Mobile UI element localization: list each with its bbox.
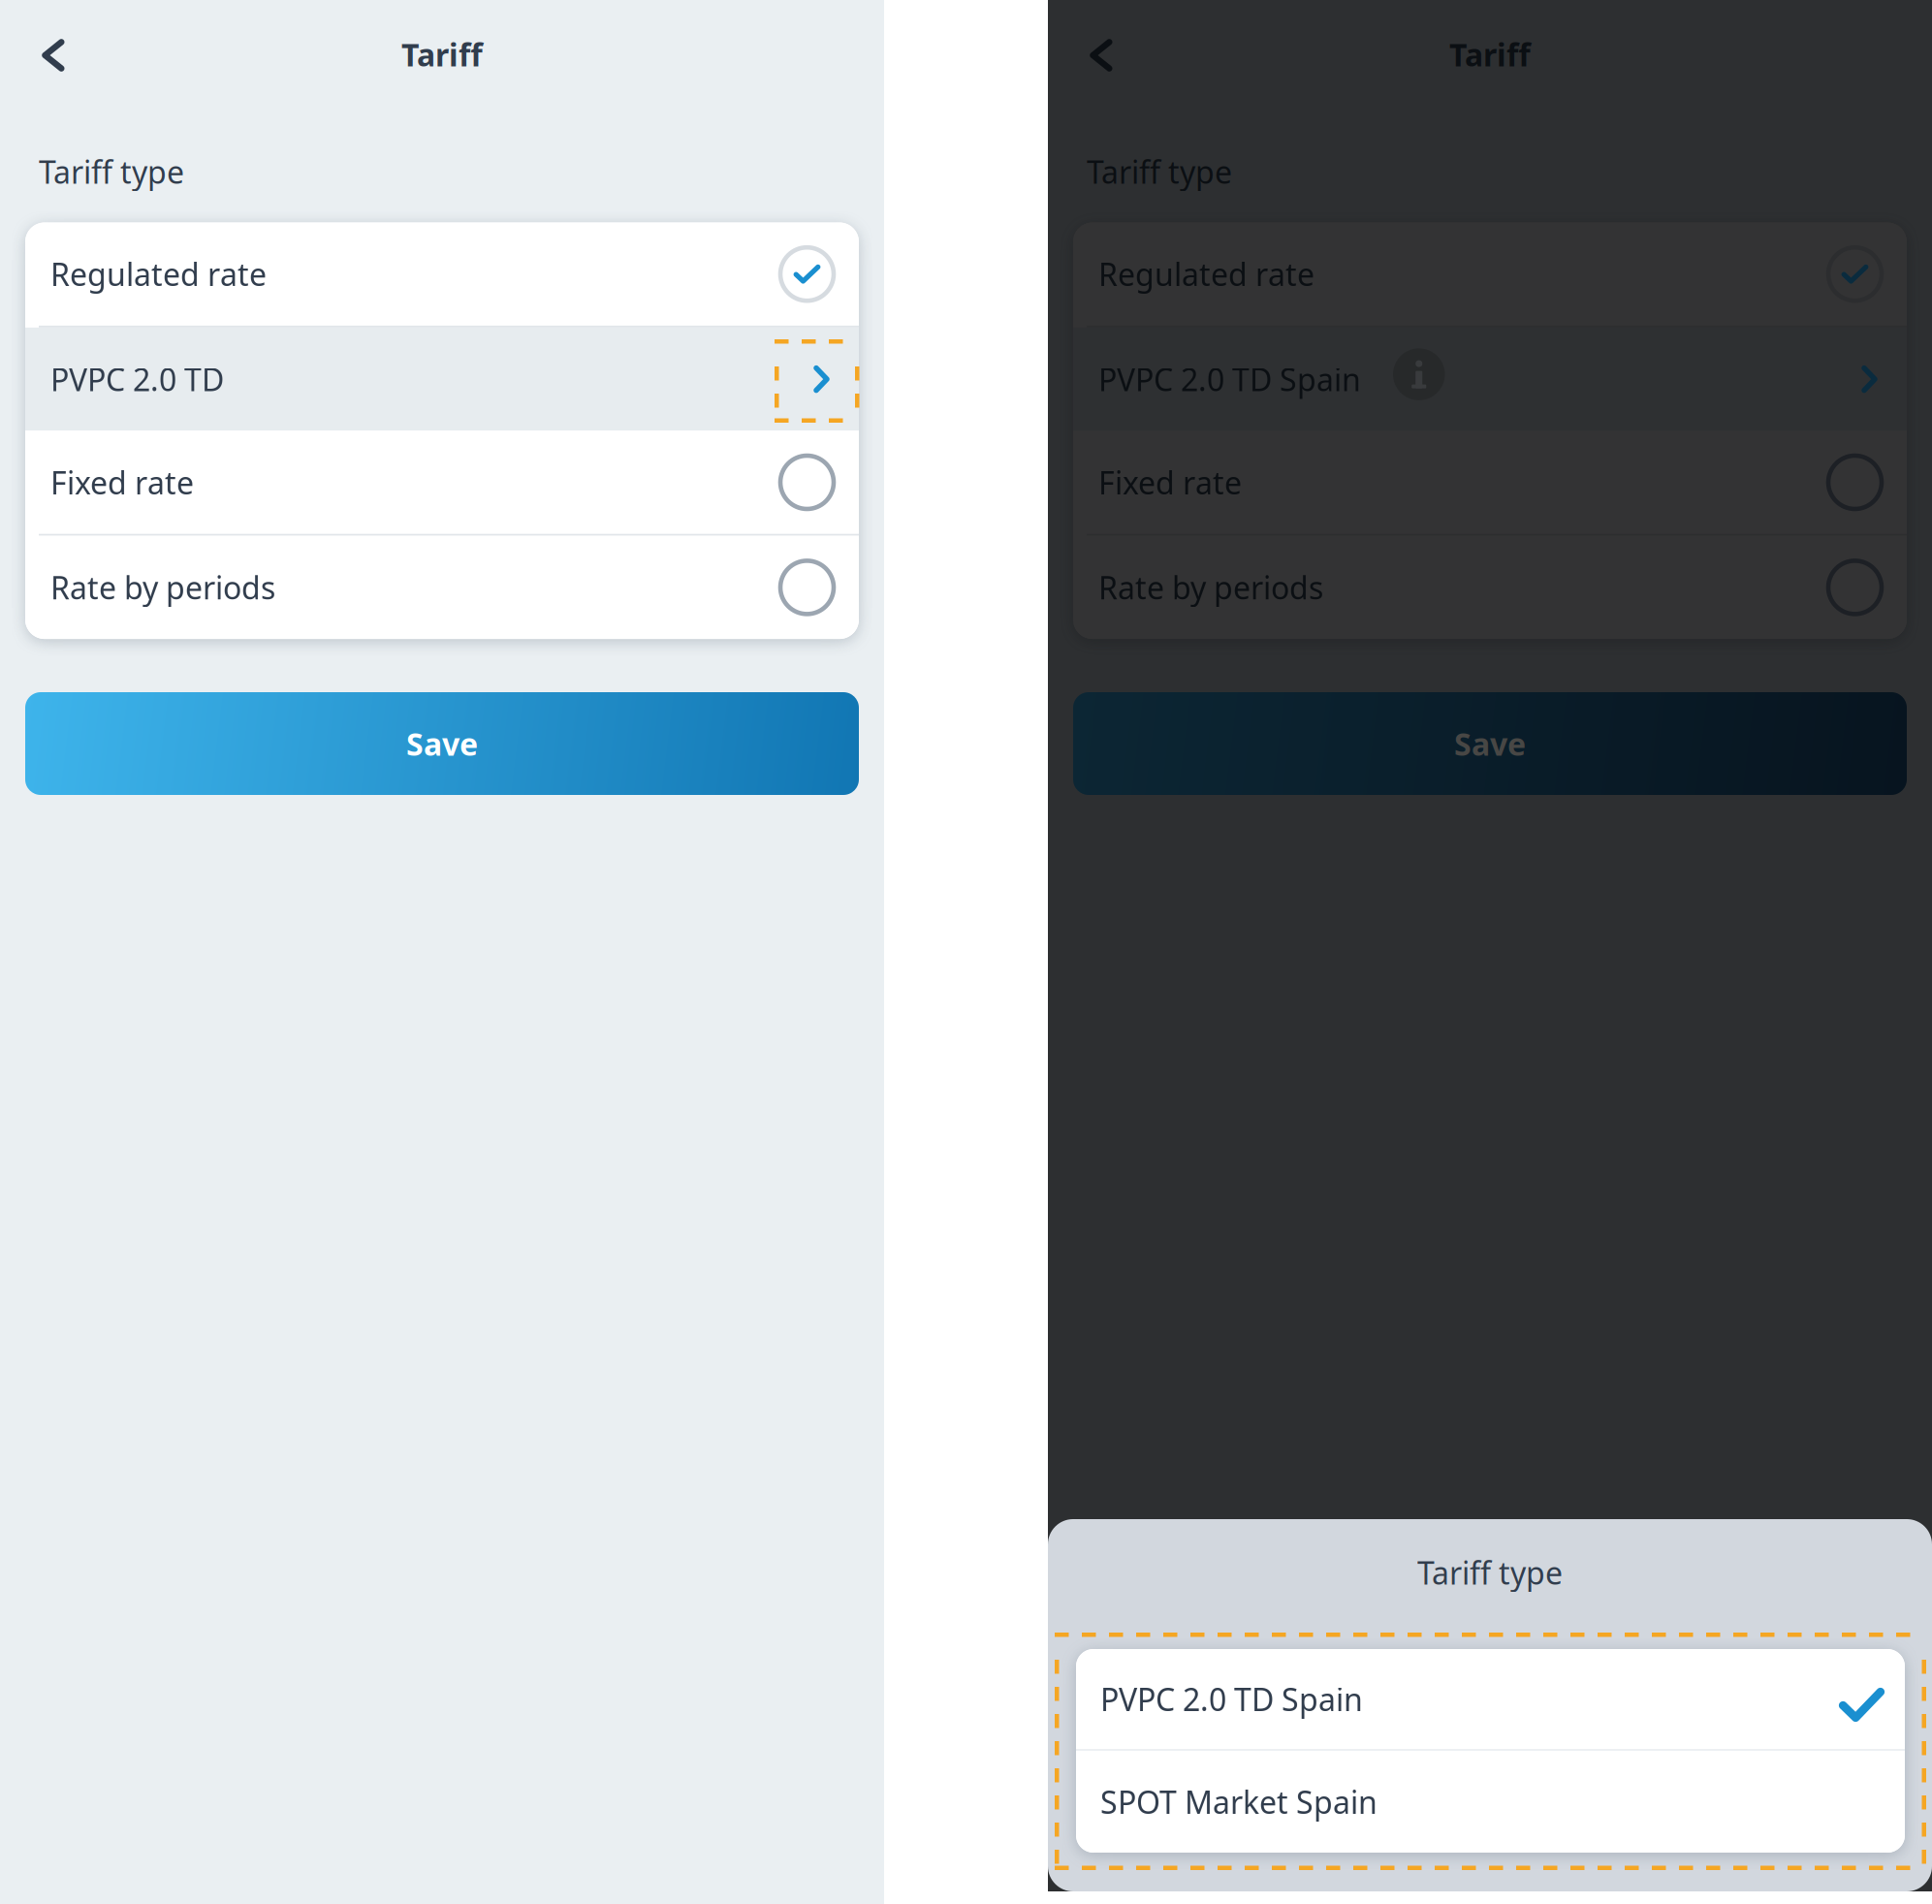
button[interactable]: PVPC 2.0 TD Spain <box>1076 1649 1905 1749</box>
staticText: PVPC 2.0 TD <box>50 359 224 400</box>
button[interactable]: Fixed rate <box>1073 431 1907 534</box>
staticText: Rate by periods <box>1098 567 1323 608</box>
staticText: Tariff <box>1449 34 1531 75</box>
button[interactable]: PVPC 2.0 TD Spain <box>1073 328 1907 431</box>
button[interactable]: Fixed rate <box>25 431 859 534</box>
staticText: Tariff type <box>1087 151 1232 192</box>
staticText: SPOT Market Spain <box>1100 1781 1378 1822</box>
button[interactable]: Back <box>11 1 96 110</box>
button[interactable]: Save <box>25 692 859 795</box>
staticText: Regulated rate <box>50 254 267 295</box>
button[interactable]: PVPC 2.0 TD <box>25 328 859 431</box>
staticText: Regulated rate <box>1098 254 1314 295</box>
button[interactable]: Rate by periods <box>25 536 859 639</box>
button[interactable]: Back <box>1059 1 1144 110</box>
staticText: Tariff type <box>39 151 184 192</box>
staticText: Save <box>406 723 478 764</box>
staticText: Save <box>1454 723 1526 764</box>
button[interactable]: Regulated rate <box>25 222 859 326</box>
button[interactable]: Regulated rate <box>1073 222 1907 326</box>
staticText: PVPC 2.0 TD Spain <box>1098 359 1361 400</box>
staticText: Tariff <box>401 34 483 75</box>
button[interactable]: More information <box>1393 348 1445 400</box>
staticText: Rate by periods <box>50 567 275 608</box>
staticText: Fixed rate <box>1098 462 1242 503</box>
button[interactable]: Rate by periods <box>1073 536 1907 639</box>
button[interactable]: Save <box>1073 692 1907 795</box>
staticText: Fixed rate <box>50 462 194 503</box>
button[interactable]: SPOT Market Spain <box>1076 1751 1905 1853</box>
staticText: PVPC 2.0 TD Spain <box>1100 1678 1363 1720</box>
staticText: Tariff type <box>1417 1552 1563 1593</box>
